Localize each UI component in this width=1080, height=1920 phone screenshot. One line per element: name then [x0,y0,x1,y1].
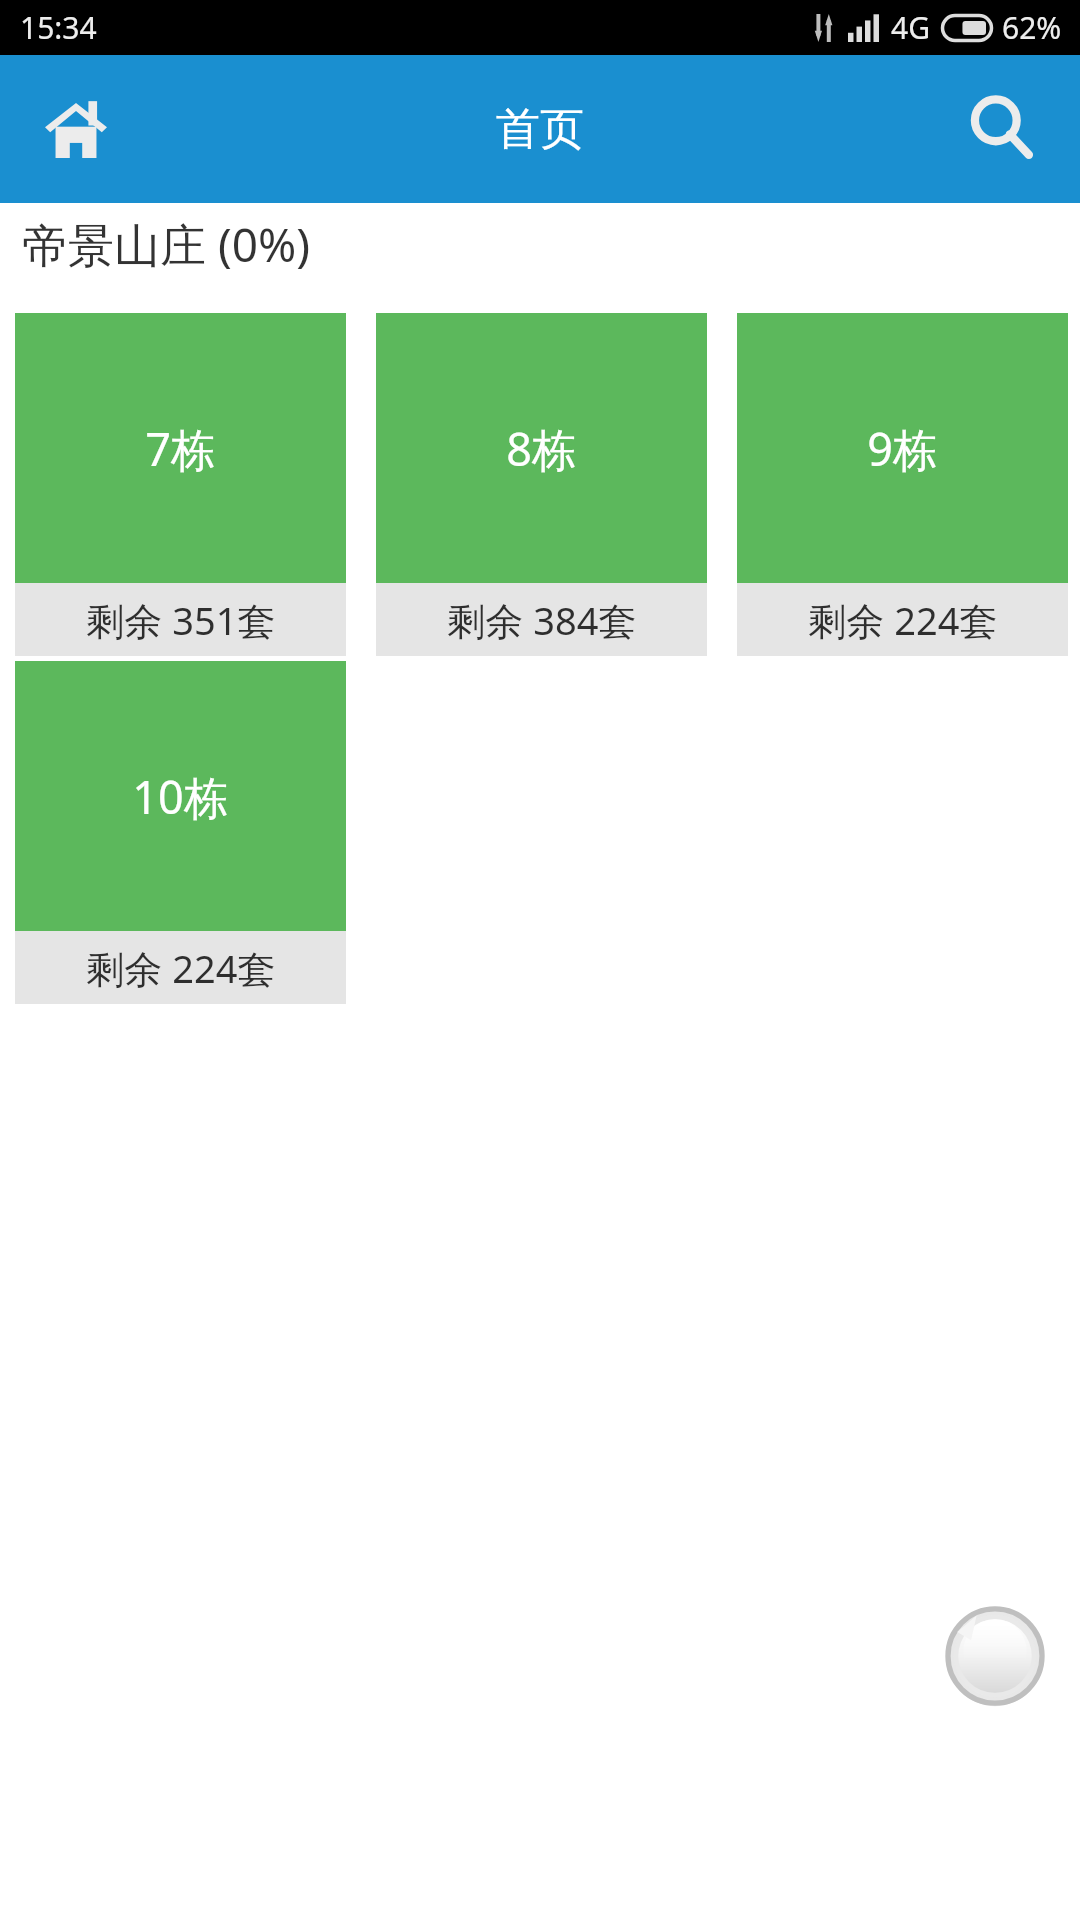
staticText: 剩余 384套 [447,594,637,646]
staticText: 剩余 351套 [86,594,276,646]
staticText: 剩余 224套 [808,594,998,646]
button[interactable]: Home [14,67,138,191]
staticText: 15:34 [20,7,97,48]
staticText: 8栋 [506,418,577,479]
staticText: 10栋 [132,766,229,827]
staticText: 9栋 [867,418,938,479]
button[interactable]: 8栋 [376,313,707,656]
button[interactable]: 10栋 [15,661,346,1004]
button[interactable]: 7栋 [15,313,346,656]
staticText: 帝景山庄 (0%) [22,213,311,276]
staticText: 62% [1002,7,1062,48]
button[interactable]: Assistive touch [945,1606,1045,1706]
staticText: 首页 [496,102,584,157]
staticText: 剩余 224套 [86,942,276,994]
staticText: 4G [891,7,930,48]
button[interactable]: Search [944,70,1062,188]
staticText: 7栋 [145,418,216,479]
button[interactable]: 9栋 [737,313,1068,656]
